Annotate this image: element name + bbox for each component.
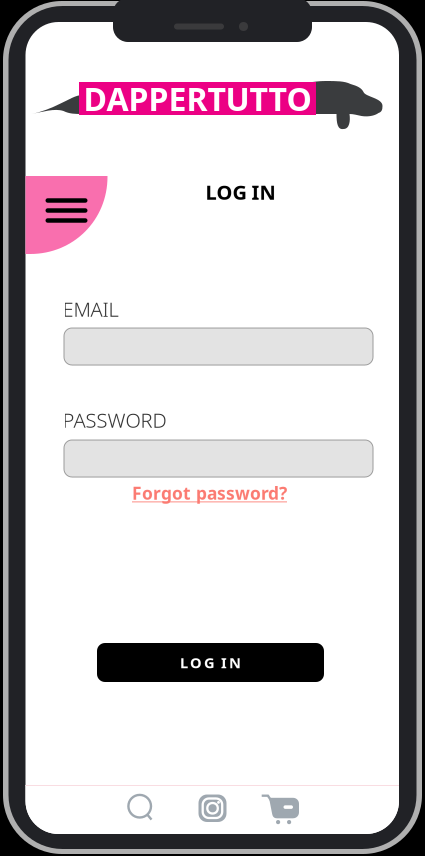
- button[interactable]: Menu: [25, 176, 107, 254]
- button[interactable]: Forgot password?: [99, 482, 319, 504]
- staticText: Forgot password?: [132, 481, 287, 504]
- staticText: L O G I N: [180, 653, 241, 672]
- button[interactable]: Instagram: [197, 793, 227, 823]
- staticText: DAPPERTUTTO: [83, 77, 311, 120]
- button[interactable]: L O G I N: [97, 643, 324, 682]
- staticText: EMAIL: [62, 296, 118, 322]
- button[interactable]: Search: [126, 793, 154, 823]
- staticText: PASSWORD: [62, 407, 166, 433]
- staticText: LOG IN: [205, 179, 275, 205]
- button[interactable]: Cart: [260, 792, 300, 824]
